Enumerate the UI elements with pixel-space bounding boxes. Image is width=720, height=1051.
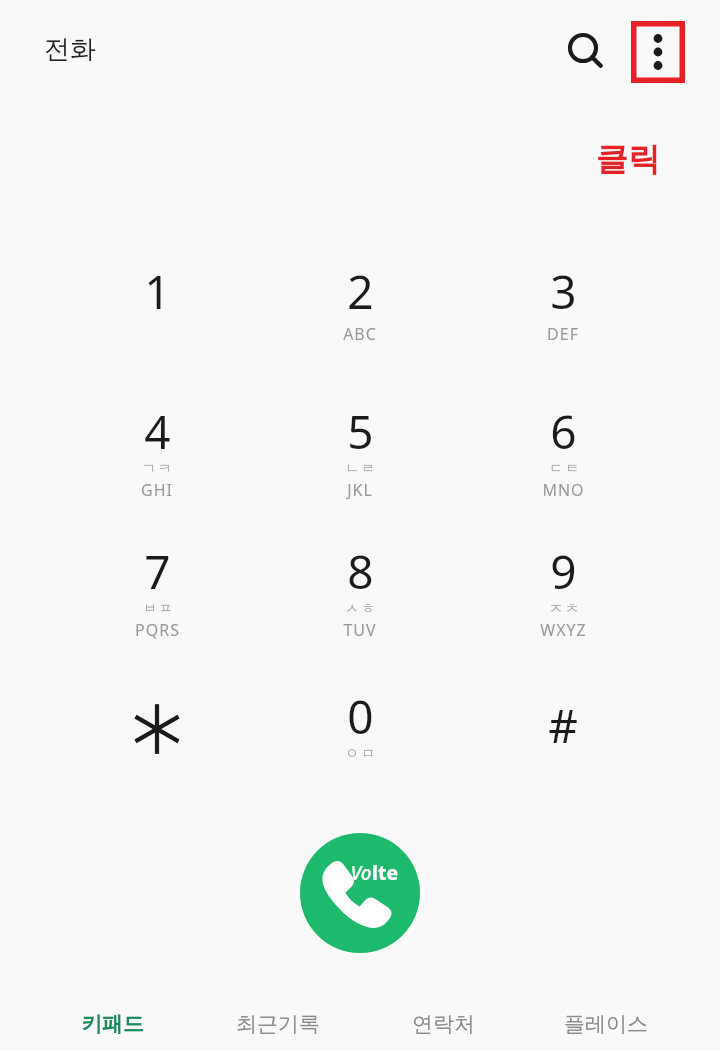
button[interactable]: 8 xyxy=(275,536,445,664)
staticText: ㅇㅁ xyxy=(344,745,376,763)
staticText: ABC xyxy=(343,323,377,345)
staticText: 6 xyxy=(550,400,577,463)
button[interactable]: 최근기록 xyxy=(198,1003,358,1051)
button[interactable]: Search xyxy=(558,22,610,74)
staticText: 전화 xyxy=(44,33,96,66)
staticText: 2 xyxy=(347,260,374,323)
staticText: ㅈㅊ xyxy=(548,600,580,618)
staticText: 0 xyxy=(347,685,374,748)
staticText: 1 xyxy=(144,260,171,323)
button[interactable]: 연락처 xyxy=(363,1003,523,1051)
staticText: 연락처 xyxy=(412,1011,475,1037)
button[interactable]: More options xyxy=(628,18,688,86)
button[interactable]: Pound xyxy=(478,676,648,796)
button[interactable]: 7 xyxy=(72,536,242,664)
button[interactable]: Call xyxy=(300,833,420,953)
button[interactable]: 4 xyxy=(72,396,242,524)
staticText: ㄱㅋ xyxy=(141,460,173,478)
button[interactable]: 3 xyxy=(478,256,648,384)
button[interactable]: 플레이스 xyxy=(526,1003,686,1051)
button[interactable]: 키패드 xyxy=(32,1003,192,1051)
staticText: DEF xyxy=(547,323,579,345)
staticText: # xyxy=(548,694,578,757)
staticText: 8 xyxy=(347,540,374,603)
button[interactable]: 0 xyxy=(275,681,445,809)
button[interactable]: 1 xyxy=(72,256,242,384)
staticText: ㅅㅎ xyxy=(344,600,376,618)
button[interactable]: 9 xyxy=(478,536,648,664)
staticText: Vo xyxy=(350,860,372,886)
staticText: MNO xyxy=(542,479,585,501)
staticText: WXYZ xyxy=(540,619,587,641)
staticText: ㄴㄹ xyxy=(344,460,376,478)
staticText: ㅂㅍ xyxy=(142,600,174,618)
staticText: GHI xyxy=(141,479,173,501)
staticText: 키패드 xyxy=(81,1011,144,1037)
staticText: 9 xyxy=(550,540,577,603)
staticText: ㄷㅌ xyxy=(548,460,580,478)
staticText: 4 xyxy=(144,400,171,463)
button[interactable]: Star xyxy=(72,676,242,796)
staticText: PQRS xyxy=(135,619,180,641)
button[interactable]: 5 xyxy=(275,396,445,524)
staticText: 7 xyxy=(144,540,171,603)
staticText: 플레이스 xyxy=(564,1011,648,1037)
staticText: 클릭 xyxy=(596,139,660,179)
staticText: lte xyxy=(372,860,398,886)
staticText: 5 xyxy=(347,400,374,463)
button[interactable]: 2 xyxy=(275,256,445,384)
staticText: 3 xyxy=(550,260,577,323)
button[interactable]: 6 xyxy=(478,396,648,524)
staticText: TUV xyxy=(343,619,377,641)
staticText: 최근기록 xyxy=(236,1011,320,1037)
staticText: JKL xyxy=(347,479,373,501)
